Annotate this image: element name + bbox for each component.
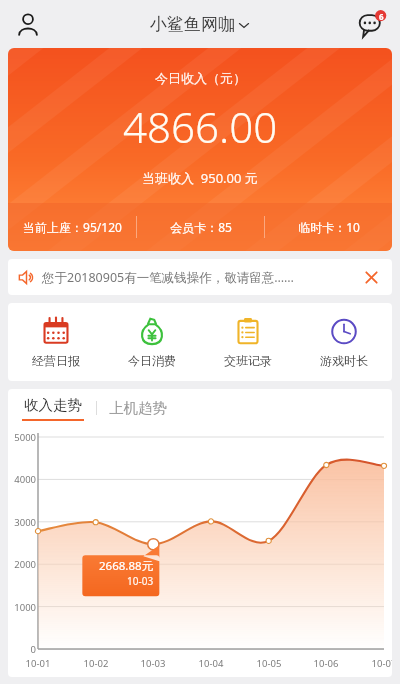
staticText: 3000	[10, 516, 36, 529]
button[interactable]: Dismiss notice	[360, 266, 382, 288]
staticText: 10-06	[310, 657, 342, 670]
staticText: 上机趋势	[109, 399, 167, 417]
staticText: 临时卡：10	[298, 219, 360, 235]
staticText: 2000	[10, 558, 36, 571]
button[interactable]: 当前上座：95/120	[8, 219, 136, 235]
staticText: 10-01	[22, 657, 54, 670]
staticText: 4000	[10, 473, 36, 486]
staticText: 今日消费	[128, 353, 176, 368]
staticText: 10-07	[368, 657, 392, 670]
staticText: 今日收入（元）	[155, 70, 246, 86]
button[interactable]: Profile	[8, 4, 48, 44]
staticText: 10-04	[195, 657, 227, 670]
staticText: 0	[10, 643, 36, 656]
staticText: 5000	[10, 431, 36, 444]
staticText: 您于20180905有一笔减钱操作，敬请留意……	[42, 269, 354, 286]
button[interactable]: 临时卡：10	[265, 219, 392, 235]
staticText: 小鲨鱼网咖	[150, 14, 235, 35]
button[interactable]: 经营日报	[8, 313, 104, 372]
button[interactable]: 上机趋势	[109, 399, 167, 417]
staticText: 10-05	[253, 657, 285, 670]
staticText: 10-03	[127, 574, 154, 588]
button[interactable]: 收入走势	[22, 396, 84, 421]
button[interactable]: 今日收入（元）	[8, 48, 392, 251]
staticText: 6	[379, 11, 384, 22]
staticText: 2668.88元	[99, 558, 154, 574]
button[interactable]: 小鲨鱼网咖	[150, 14, 250, 35]
staticText: 1000	[10, 601, 36, 614]
button[interactable]: 交班记录	[200, 313, 296, 372]
staticText: 当班收入 950.00 元	[142, 169, 258, 187]
staticText: 收入走势	[24, 396, 82, 414]
staticText: 游戏时长	[320, 353, 368, 368]
staticText: 4866.00	[123, 98, 278, 155]
button[interactable]: 会员卡：85	[137, 219, 264, 235]
staticText: 经营日报	[32, 353, 80, 368]
button[interactable]: 今日消费	[104, 313, 200, 372]
staticText: 交班记录	[224, 353, 272, 368]
staticText: 当前上座：95/120	[23, 219, 122, 235]
button[interactable]: 游戏时长	[296, 313, 392, 372]
staticText: 会员卡：85	[170, 219, 232, 235]
button[interactable]: Messages, 6 unread	[352, 4, 392, 44]
staticText: 10-02	[80, 657, 112, 670]
staticText: 10-03	[137, 657, 169, 670]
button[interactable]: 您于20180905有一笔减钱操作，敬请留意……	[8, 259, 392, 295]
